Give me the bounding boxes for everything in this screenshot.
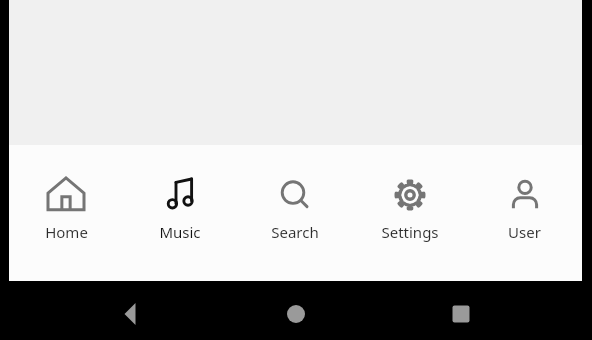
button[interactable]: Recent apps [439,292,483,336]
button[interactable]: Home [274,292,318,336]
staticText: Home [45,222,88,242]
button[interactable]: Back [108,292,152,336]
button[interactable]: Music [123,145,237,281]
staticText: Settings [381,222,439,242]
button[interactable]: User [467,145,582,281]
staticText: Search [271,222,319,242]
button[interactable]: Home [9,145,123,281]
staticText: User [508,222,541,242]
staticText: Music [159,222,201,242]
button[interactable]: Search [237,145,352,281]
button[interactable]: Settings [352,145,467,281]
